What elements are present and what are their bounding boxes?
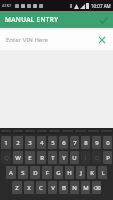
staticText: F <box>45 169 49 177</box>
button[interactable]: H <box>65 166 74 179</box>
staticText: T <box>51 154 55 162</box>
button[interactable]: W <box>13 151 23 164</box>
button[interactable]: 6 <box>59 136 68 149</box>
button[interactable]: 8 <box>81 136 90 149</box>
button[interactable]: Clear <box>95 33 109 47</box>
button[interactable]: 0 <box>103 136 112 149</box>
staticText: AT&T <box>2 3 12 8</box>
staticText: J <box>80 169 82 177</box>
staticText: S <box>21 169 25 177</box>
staticText: R <box>40 154 44 162</box>
staticText: 1 <box>4 139 8 147</box>
button[interactable]: V <box>48 181 57 194</box>
staticText: O <box>94 154 99 162</box>
button[interactable]: 2 <box>13 136 23 149</box>
staticText: 4 <box>40 139 44 147</box>
button[interactable]: Confirm <box>96 13 110 27</box>
button[interactable]: L <box>98 166 107 179</box>
staticText: A <box>9 169 13 177</box>
button[interactable]: U <box>70 151 79 164</box>
button[interactable]: 5 <box>48 136 57 149</box>
staticText: Y <box>62 154 66 162</box>
staticText: 5 <box>51 139 55 147</box>
staticText: D <box>33 169 38 177</box>
staticText: 6 <box>62 139 66 147</box>
staticText: MANUAL ENTRY <box>5 15 59 24</box>
staticText: 0 <box>106 139 110 147</box>
staticText: B <box>62 184 66 192</box>
button[interactable]: M <box>81 181 90 194</box>
staticText: X <box>27 184 31 192</box>
staticText: 3 <box>28 139 32 147</box>
staticText: M <box>83 184 89 192</box>
staticText: H <box>67 169 72 177</box>
button[interactable]: F <box>42 166 52 179</box>
button[interactable]: B <box>59 181 68 194</box>
staticText: E <box>28 154 32 162</box>
button[interactable]: S <box>18 166 28 179</box>
button[interactable]: P <box>103 151 112 164</box>
staticText: 9 <box>95 139 99 147</box>
button[interactable]: C <box>36 181 46 194</box>
button[interactable]: Z <box>12 181 22 194</box>
staticText: V <box>51 184 55 192</box>
staticText: 10:07 AM <box>91 3 111 9</box>
button[interactable]: 1 <box>1 136 11 149</box>
button[interactable]: 4 <box>37 136 46 149</box>
button[interactable]: Y <box>59 151 68 164</box>
staticText: Enter VIN Here <box>6 36 48 44</box>
staticText: K <box>90 169 94 177</box>
staticText: L <box>101 169 105 177</box>
button[interactable]: T <box>48 151 57 164</box>
button[interactable]: J <box>76 166 85 179</box>
staticText: Q <box>4 154 9 162</box>
staticText: 7 <box>73 139 77 147</box>
staticText: Z <box>15 184 19 192</box>
staticText: ⌫ <box>93 185 101 191</box>
staticText: 8 <box>84 139 88 147</box>
button[interactable]: A <box>6 166 16 179</box>
staticText: N <box>72 184 77 192</box>
staticText: U <box>72 154 77 162</box>
button[interactable]: K <box>87 166 96 179</box>
button[interactable]: E <box>25 151 35 164</box>
staticText: 2 <box>16 139 20 147</box>
staticText: W <box>15 154 21 162</box>
button[interactable]: 9 <box>92 136 101 149</box>
button[interactable]: G <box>54 166 63 179</box>
button[interactable]: I <box>81 151 90 164</box>
button[interactable]: X <box>24 181 34 194</box>
staticText: G <box>56 169 61 177</box>
staticText: I <box>84 154 87 162</box>
staticText: P <box>106 154 110 162</box>
button[interactable]: 7 <box>70 136 79 149</box>
button[interactable]: R <box>37 151 46 164</box>
button[interactable]: Q <box>1 151 11 164</box>
button[interactable]: 3 <box>25 136 35 149</box>
staticText: C <box>39 184 43 192</box>
button[interactable]: D <box>30 166 40 179</box>
button[interactable]: N <box>70 181 79 194</box>
button[interactable]: O <box>92 151 101 164</box>
button[interactable]: ⌫ <box>92 181 101 194</box>
